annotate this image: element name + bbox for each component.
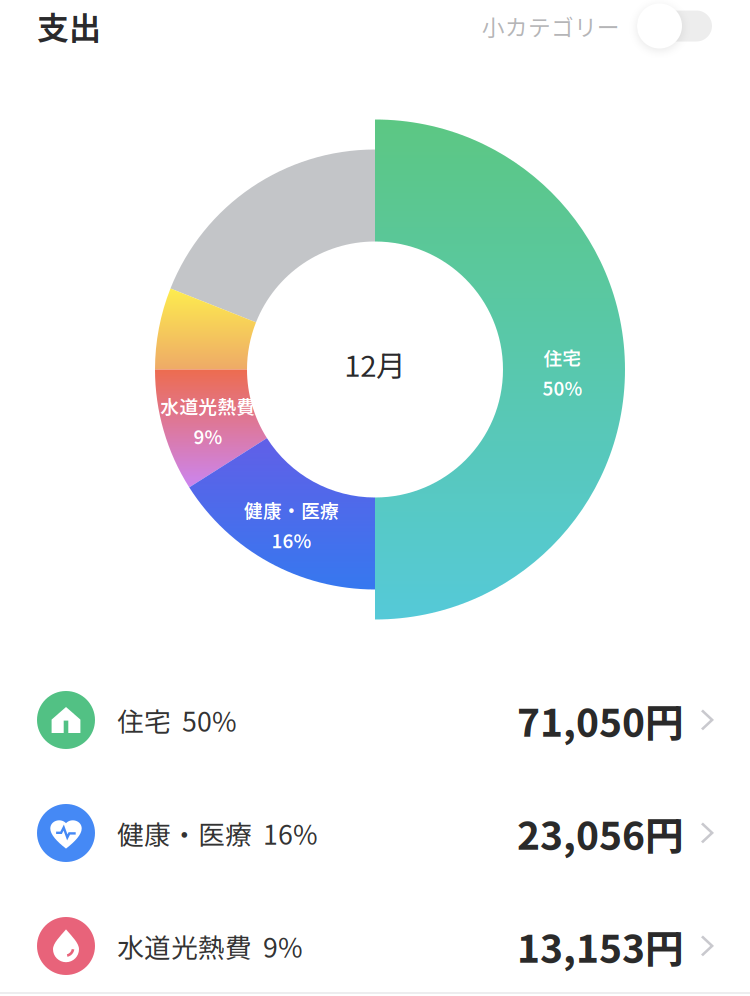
staticText: 小カテゴリー bbox=[482, 10, 620, 42]
button[interactable]: 小カテゴリー bbox=[637, 3, 712, 48]
button[interactable]: 住宅 bbox=[0, 663, 750, 776]
button[interactable]: 水道光熱費 bbox=[0, 889, 750, 996]
staticText: 16% bbox=[271, 526, 311, 553]
staticText: 9% bbox=[193, 422, 222, 449]
button[interactable]: 健康・医療 bbox=[0, 776, 750, 889]
staticText: 9% bbox=[263, 927, 303, 965]
staticText: 50% bbox=[542, 374, 582, 401]
staticText: 水道光熱費 bbox=[160, 392, 255, 419]
staticText: 23,056円 bbox=[517, 805, 684, 861]
staticText: 12月 bbox=[344, 343, 405, 385]
staticText: 支出 bbox=[37, 3, 101, 49]
staticText: 13,153円 bbox=[517, 918, 684, 974]
staticText: 住宅 bbox=[117, 701, 171, 739]
staticText: 健康・医療 bbox=[117, 814, 252, 852]
staticText: 71,050円 bbox=[517, 692, 684, 748]
staticText: 水道光熱費 bbox=[117, 927, 252, 965]
staticText: 健康・医療 bbox=[244, 496, 339, 523]
staticText: 50% bbox=[182, 701, 237, 739]
staticText: 16% bbox=[263, 814, 318, 852]
staticText: 住宅 bbox=[543, 344, 581, 371]
